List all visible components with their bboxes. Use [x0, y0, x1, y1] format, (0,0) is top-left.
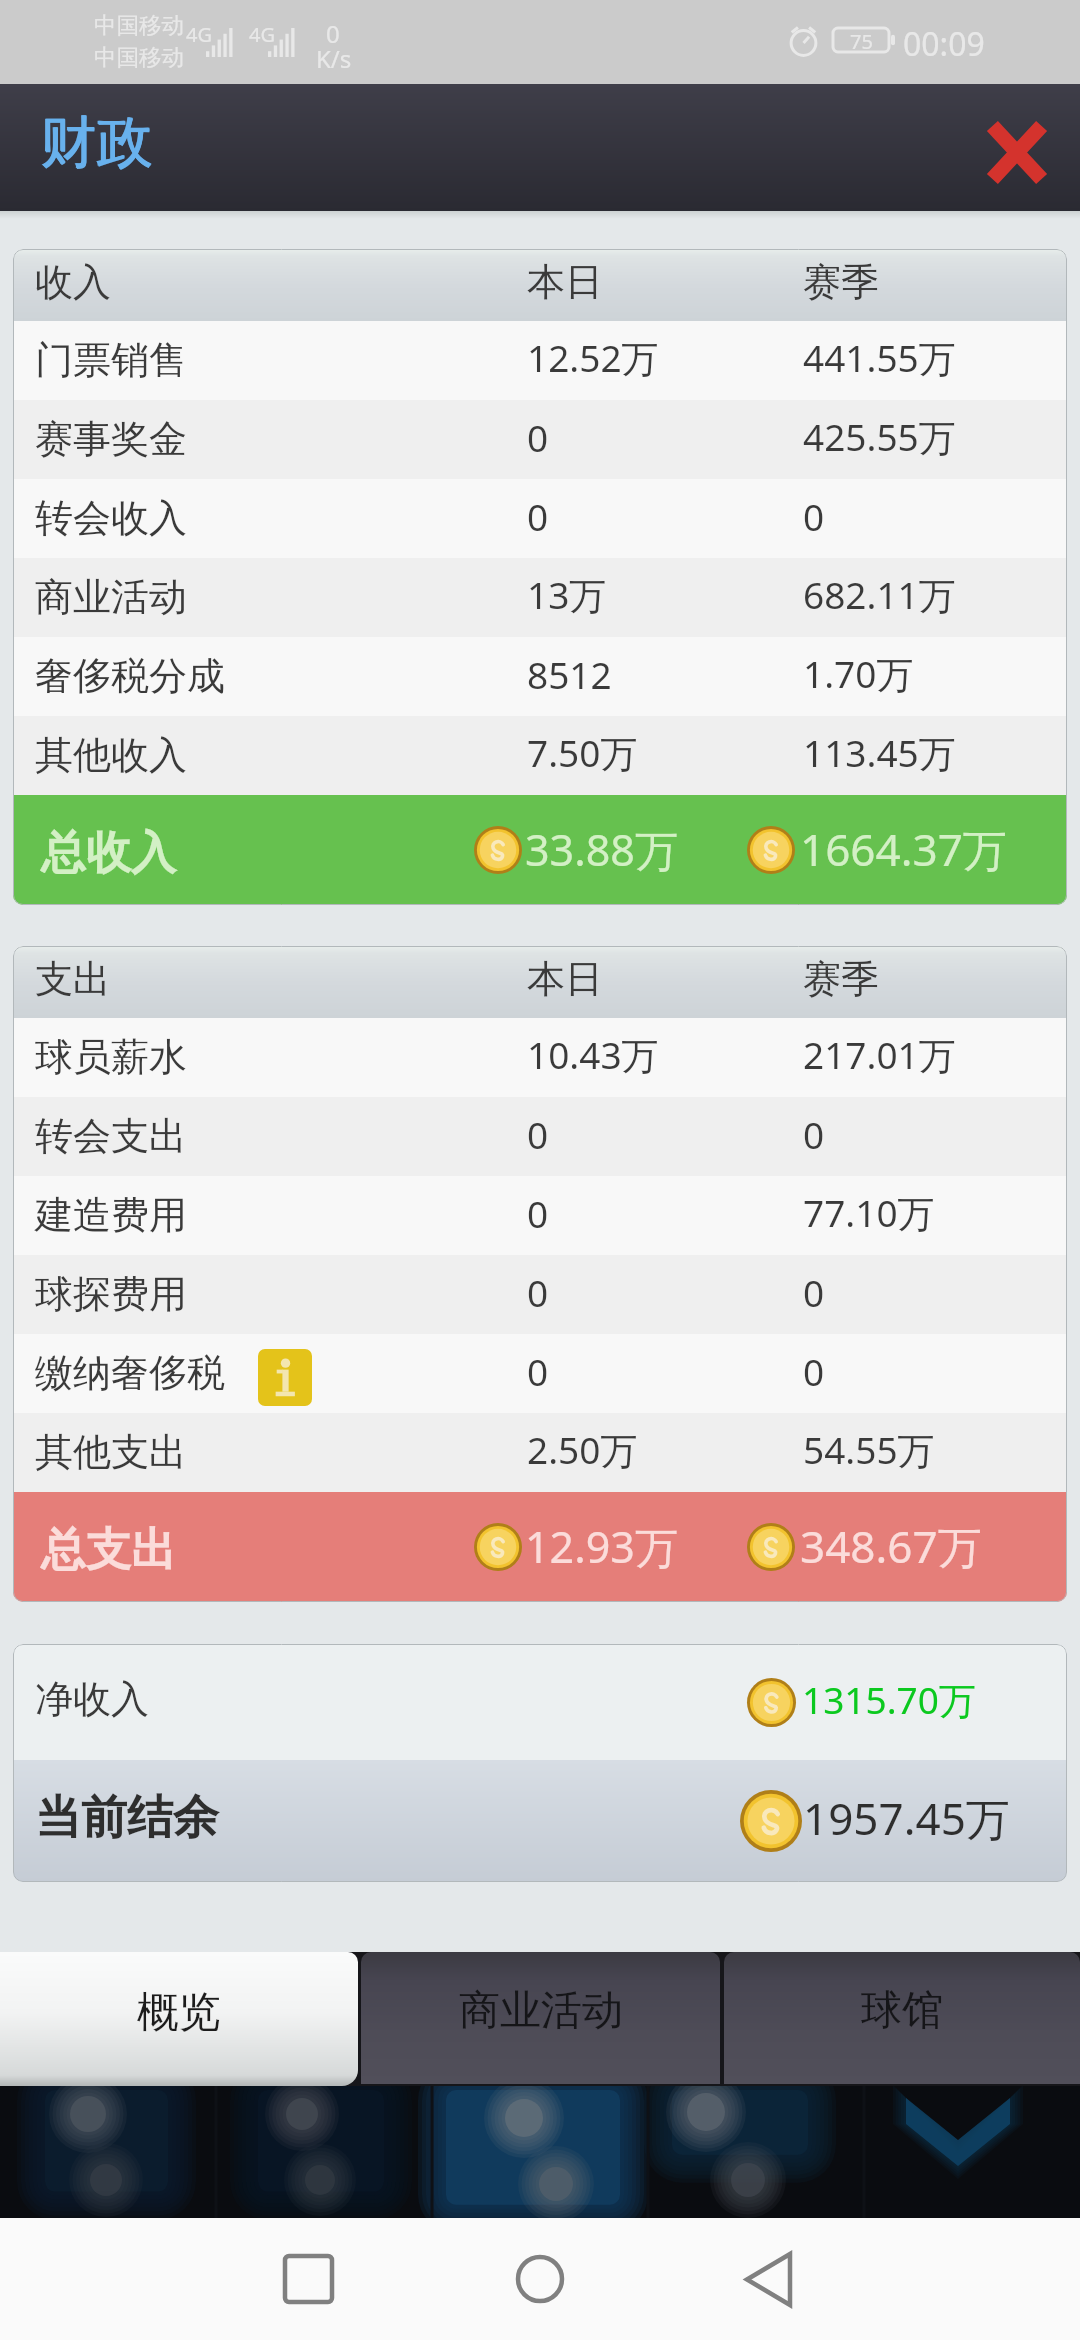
staticText: 0 — [803, 491, 825, 541]
staticText: 总收入 — [41, 825, 176, 882]
button[interactable]: Home — [482, 2218, 598, 2340]
staticText: 441.55万 — [803, 332, 956, 383]
staticText: 球员薪水 — [35, 1033, 187, 1081]
staticText: 1664.37万 — [800, 819, 1007, 879]
staticText: 0 — [527, 1267, 549, 1317]
staticText: 奢侈税分成 — [35, 652, 225, 700]
staticText: 0 — [326, 17, 340, 50]
staticText: 1315.70万 — [802, 1674, 976, 1725]
staticText: 赛季 — [803, 955, 879, 1003]
staticText: 0 — [527, 1188, 549, 1238]
staticText: 总支出 — [41, 1522, 176, 1579]
staticText: 75 — [850, 28, 873, 52]
staticText: 本日 — [527, 258, 603, 306]
staticText: 其他支出 — [35, 1428, 187, 1476]
staticText: 转会收入 — [35, 494, 187, 542]
staticText: 12.93万 — [525, 1517, 678, 1576]
staticText: 0 — [527, 1346, 549, 1396]
button[interactable]: 概览 — [0, 1952, 358, 2086]
staticText: 门票销售 — [35, 336, 187, 384]
button[interactable]: Back — [710, 2218, 826, 2340]
button[interactable]: Luxury tax info — [258, 1349, 312, 1406]
staticText: 348.67万 — [800, 1516, 982, 1576]
button[interactable]: 建造费用 — [13, 1176, 1067, 1255]
staticText: 00:09 — [903, 22, 985, 66]
staticText: 转会支出 — [35, 1112, 187, 1160]
button[interactable]: Close — [975, 110, 1059, 194]
button[interactable]: 总收入 — [13, 795, 1067, 905]
button[interactable]: Recents — [250, 2218, 366, 2340]
staticText: 217.01万 — [803, 1029, 956, 1080]
staticText: 概览 — [137, 1986, 221, 2039]
button[interactable]: 净收入 — [13, 1644, 1067, 1760]
staticText: 赛事奖金 — [35, 415, 187, 463]
button[interactable]: 球员薪水 — [13, 1018, 1067, 1097]
staticText: 球探费用 — [35, 1270, 187, 1318]
button[interactable]: 球馆 — [724, 1952, 1080, 2084]
staticText: 8512 — [527, 649, 612, 699]
button[interactable]: 总支出 — [13, 1492, 1067, 1602]
staticText: 财政 — [41, 107, 153, 178]
staticText: 0 — [803, 1346, 825, 1396]
staticText: 当前结余 — [35, 1789, 219, 1847]
button[interactable]: 其他收入 — [13, 716, 1067, 795]
staticText: 本日 — [527, 955, 603, 1003]
button[interactable]: 商业活动 — [361, 1952, 720, 2084]
staticText: 33.88万 — [525, 820, 678, 879]
staticText: 其他收入 — [35, 731, 187, 779]
button[interactable]: 门票销售 — [13, 321, 1067, 400]
staticText: 商业活动 — [459, 1985, 623, 2037]
staticText: 13万 — [527, 569, 607, 620]
button[interactable]: 转会收入 — [13, 479, 1067, 558]
staticText: 113.45万 — [803, 727, 956, 778]
staticText: 建造费用 — [35, 1191, 187, 1239]
staticText: 缴纳奢侈税 — [35, 1349, 225, 1397]
staticText: 7.50万 — [527, 727, 638, 778]
staticText: 0 — [803, 1109, 825, 1159]
button[interactable]: 球探费用 — [13, 1255, 1067, 1334]
staticText: 12.52万 — [527, 332, 659, 383]
staticText: 2.50万 — [527, 1424, 638, 1475]
button[interactable]: 转会支出 — [13, 1097, 1067, 1176]
staticText: 0 — [527, 412, 549, 462]
staticText: 77.10万 — [803, 1187, 935, 1238]
staticText: 0 — [803, 1267, 825, 1317]
button[interactable]: 赛事奖金 — [13, 400, 1067, 479]
staticText: 商业活动 — [35, 573, 187, 621]
staticText: 425.55万 — [803, 411, 956, 462]
staticText: 1.70万 — [803, 648, 914, 699]
staticText: 球馆 — [861, 1985, 943, 2037]
staticText: 收入 — [35, 258, 111, 306]
staticText: 净收入 — [35, 1675, 149, 1723]
button[interactable]: 当前结余 — [13, 1760, 1067, 1882]
staticText: 财政 — [41, 108, 153, 179]
button[interactable]: 缴纳奢侈税 — [13, 1334, 1067, 1413]
staticText: 支出 — [35, 955, 111, 1003]
staticText: 682.11万 — [803, 569, 956, 620]
staticText: 中国移动 — [94, 43, 184, 71]
staticText: 财政 — [40, 107, 152, 178]
staticText: 赛季 — [803, 258, 879, 306]
button[interactable]: 商业活动 — [13, 558, 1067, 637]
staticText: 4G — [186, 21, 212, 48]
staticText: K/s — [316, 42, 352, 75]
button[interactable]: 其他支出 — [13, 1413, 1067, 1492]
staticText: 0 — [527, 491, 549, 541]
staticText: 4G — [249, 21, 275, 48]
staticText: 10.43万 — [527, 1029, 659, 1080]
staticText: 0 — [527, 1109, 549, 1159]
staticText: 1957.45万 — [803, 1788, 1010, 1848]
staticText: 中国移动 — [94, 11, 184, 39]
staticText: 54.55万 — [803, 1424, 935, 1475]
button[interactable]: 奢侈税分成 — [13, 637, 1067, 716]
